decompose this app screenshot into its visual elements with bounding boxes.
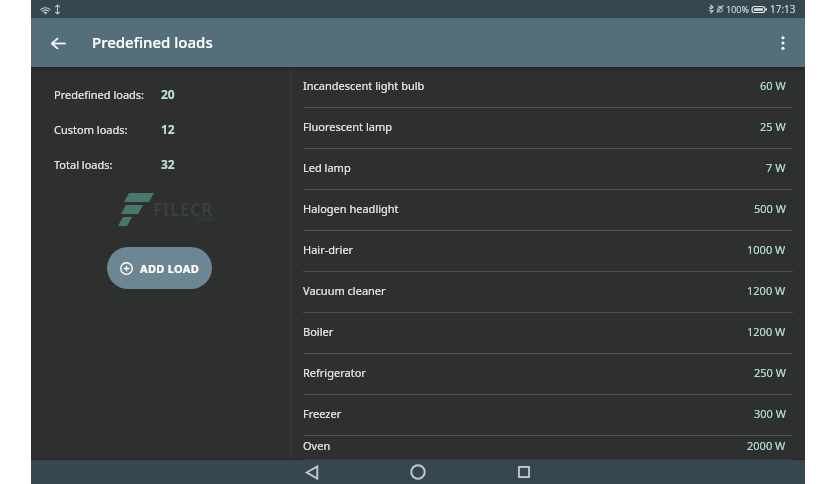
button[interactable]: Halogen headlight xyxy=(291,190,805,231)
staticText: 17:13 xyxy=(770,2,796,16)
button[interactable]: Vacuum cleaner xyxy=(291,272,805,313)
button[interactable]: Hair-drier xyxy=(291,231,805,272)
staticText: 2000 W xyxy=(747,438,786,453)
staticText: Incandescent light bulb xyxy=(303,78,425,93)
staticText: 500 W xyxy=(754,201,786,216)
staticText: 32 xyxy=(161,156,175,172)
button[interactable]: Home xyxy=(405,460,431,484)
button[interactable]: Back xyxy=(299,460,325,484)
staticText: Predefined loads xyxy=(92,32,213,52)
staticText: Freezer xyxy=(303,406,342,421)
button[interactable]: ADD LOAD xyxy=(107,247,212,289)
staticText: 1000 W xyxy=(747,242,786,257)
staticText: 1200 W xyxy=(747,324,786,339)
staticText: Oven xyxy=(303,438,331,453)
staticText: Refrigerator xyxy=(303,365,366,380)
staticText: .com xyxy=(194,213,214,224)
staticText: 250 W xyxy=(754,365,786,380)
button[interactable]: Boiler xyxy=(291,313,805,354)
button[interactable]: Refrigerator xyxy=(291,354,805,395)
staticText: Custom loads: xyxy=(54,122,128,137)
button[interactable]: Incandescent light bulb xyxy=(291,67,805,108)
staticText: 100% xyxy=(726,3,749,15)
button[interactable]: Navigate up xyxy=(42,27,74,59)
staticText: 20 xyxy=(161,86,175,102)
staticText: Led lamp xyxy=(303,160,351,175)
staticText: Fluorescent lamp xyxy=(303,119,392,134)
staticText: Hair-drier xyxy=(303,242,354,257)
staticText: FILECR xyxy=(153,198,214,221)
staticText: Halogen headlight xyxy=(303,201,399,216)
staticText: Total loads: xyxy=(54,157,113,172)
button[interactable]: Freezer xyxy=(291,395,805,436)
staticText: ADD LOAD xyxy=(140,261,200,276)
button[interactable]: Oven xyxy=(291,436,805,460)
staticText: 60 W xyxy=(760,78,786,93)
button[interactable]: Led lamp xyxy=(291,149,805,190)
staticText: 300 W xyxy=(754,406,786,421)
staticText: 12 xyxy=(161,121,175,137)
staticText: Vacuum cleaner xyxy=(303,283,386,298)
staticText: 7 W xyxy=(766,160,786,175)
button[interactable]: Recent apps xyxy=(511,460,537,484)
staticText: 1200 W xyxy=(747,283,786,298)
staticText: Boiler xyxy=(303,324,334,339)
staticText: Predefined loads: xyxy=(54,87,145,102)
staticText: 25 W xyxy=(760,119,786,134)
button[interactable]: Fluorescent lamp xyxy=(291,108,805,149)
button[interactable]: More options xyxy=(767,27,799,59)
